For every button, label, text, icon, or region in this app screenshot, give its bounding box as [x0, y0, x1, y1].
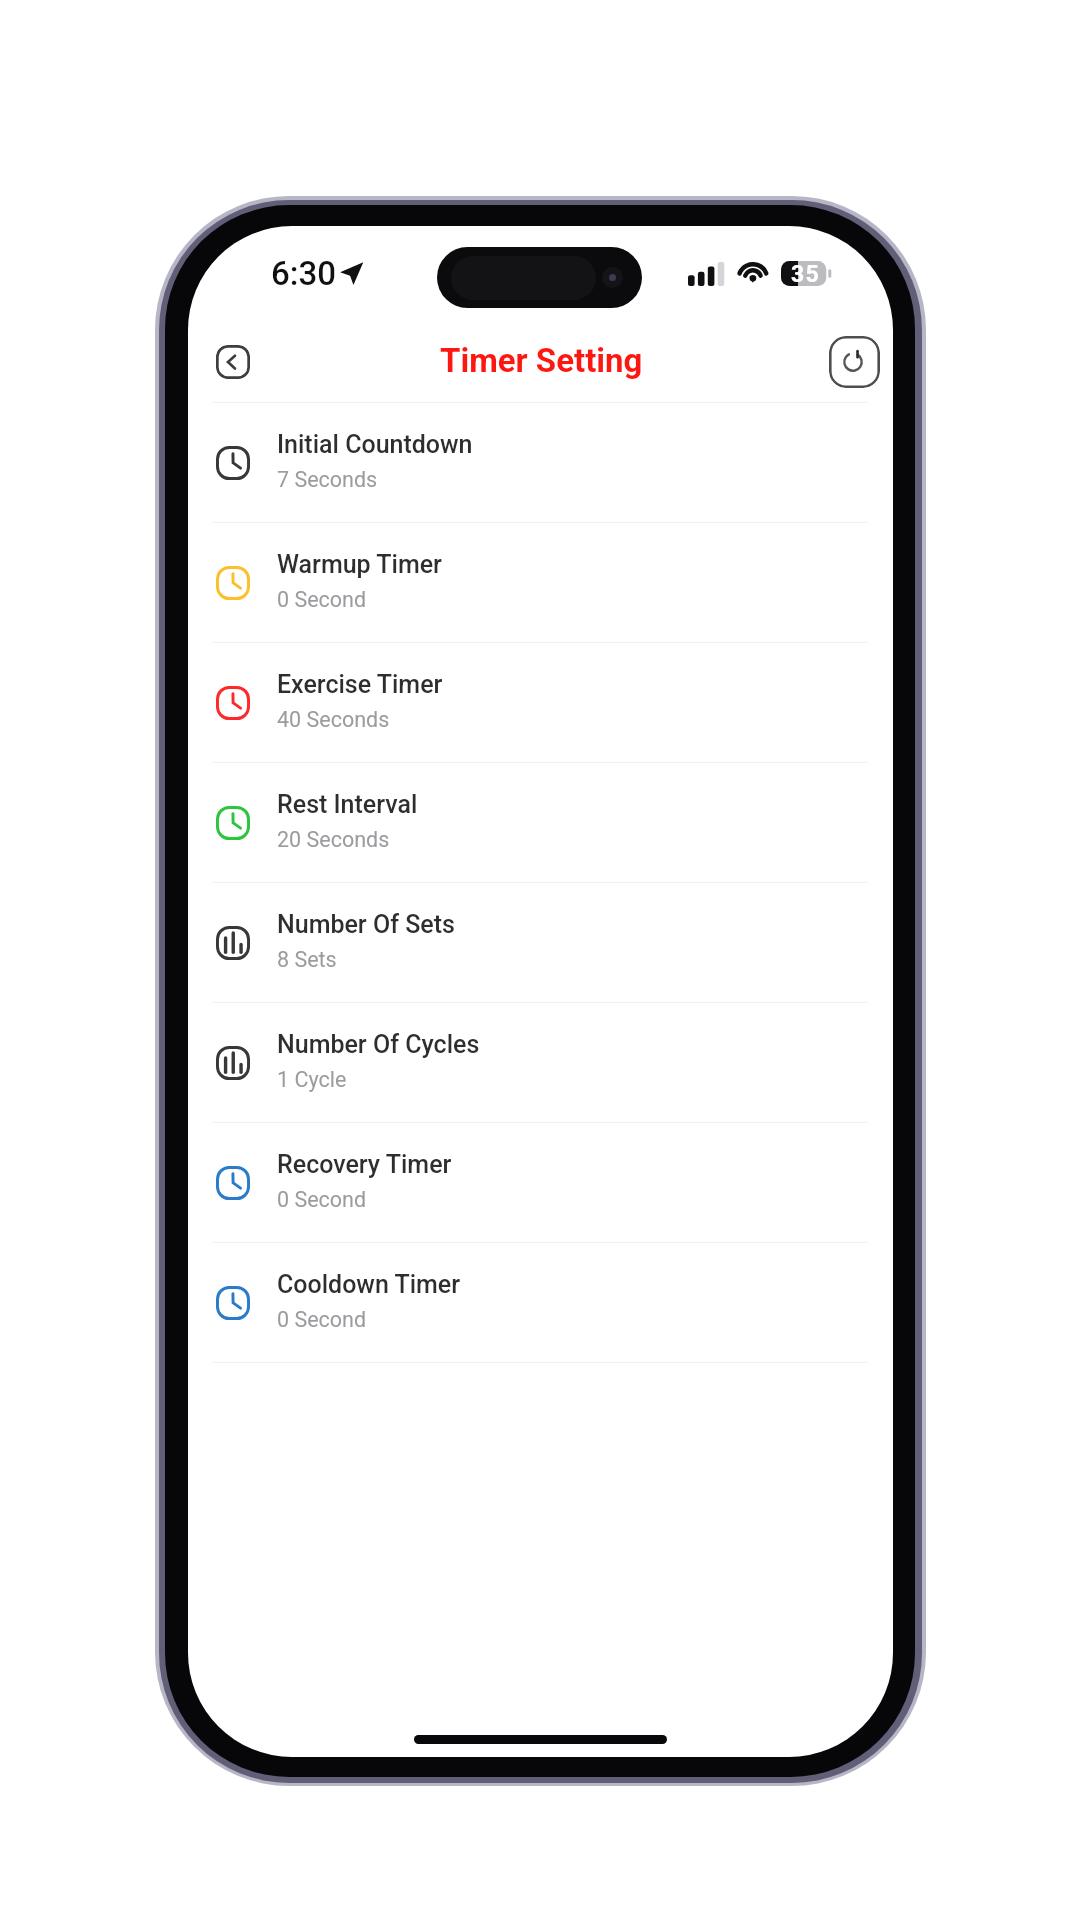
button[interactable]: Cooldown Timer — [188, 1243, 893, 1362]
button[interactable]: Warmup Timer — [188, 523, 893, 642]
staticText: 0 Second — [277, 1187, 367, 1212]
staticText: 0 Second — [277, 1307, 367, 1332]
staticText: 6:30 — [271, 254, 336, 293]
staticText: 1 Cycle — [277, 1067, 347, 1092]
button[interactable]: Back — [216, 345, 250, 379]
button[interactable]: Number Of Sets — [188, 883, 893, 1002]
staticText: 0 Second — [277, 587, 367, 612]
staticText: 40 Seconds — [277, 707, 390, 732]
staticText: 35 — [791, 261, 820, 286]
staticText: 8 Sets — [277, 947, 337, 972]
staticText: 20 Seconds — [277, 827, 390, 852]
button[interactable]: Number Of Cycles — [188, 1003, 893, 1122]
staticText: Number Of Sets — [277, 910, 455, 939]
staticText: Recovery Timer — [277, 1150, 452, 1179]
button[interactable]: Initial Countdown — [188, 403, 893, 522]
staticText: 7 Seconds — [277, 467, 378, 492]
button[interactable]: Reset — [829, 336, 880, 388]
staticText: Rest Interval — [277, 790, 418, 819]
staticText: Timer Setting — [440, 341, 643, 380]
staticText: Exercise Timer — [277, 670, 443, 699]
button[interactable]: Exercise Timer — [188, 643, 893, 762]
staticText: Initial Countdown — [277, 430, 473, 459]
staticText: Number Of Cycles — [277, 1030, 480, 1059]
staticText: Cooldown Timer — [277, 1270, 461, 1299]
button[interactable]: Recovery Timer — [188, 1123, 893, 1242]
button[interactable]: Rest Interval — [188, 763, 893, 882]
staticText: Warmup Timer — [277, 550, 442, 579]
